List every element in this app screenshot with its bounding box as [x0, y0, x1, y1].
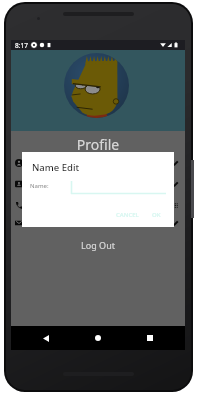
other: Edit — [172, 160, 179, 167]
other: Edit — [172, 181, 179, 188]
staticText: CANCEL — [116, 211, 139, 219]
button[interactable]: Field icon — [11, 200, 185, 210]
staticText: Profile — [11, 135, 185, 154]
button[interactable]: Home — [81, 326, 115, 350]
button[interactable]: OK — [149, 209, 164, 221]
button[interactable]: CANCEL — [113, 209, 142, 221]
button[interactable]: Back — [29, 326, 63, 350]
staticText: 8:17 — [15, 41, 28, 50]
staticText: OK — [152, 211, 161, 219]
other: Edit — [172, 220, 179, 227]
button[interactable]: Field icon — [11, 218, 185, 228]
other: Field icon — [15, 159, 23, 167]
button[interactable]: Field icon — [11, 158, 185, 168]
other: Field icon — [15, 201, 23, 209]
staticText: Name Edit — [32, 161, 80, 174]
staticText: Name: — [30, 182, 49, 190]
button[interactable]: Field icon — [11, 179, 185, 189]
other: Field icon — [15, 219, 23, 227]
button[interactable]: Recent apps — [133, 326, 167, 350]
other: Edit — [172, 202, 179, 209]
staticText: Log Out — [11, 239, 185, 251]
other: Field icon — [15, 180, 23, 188]
